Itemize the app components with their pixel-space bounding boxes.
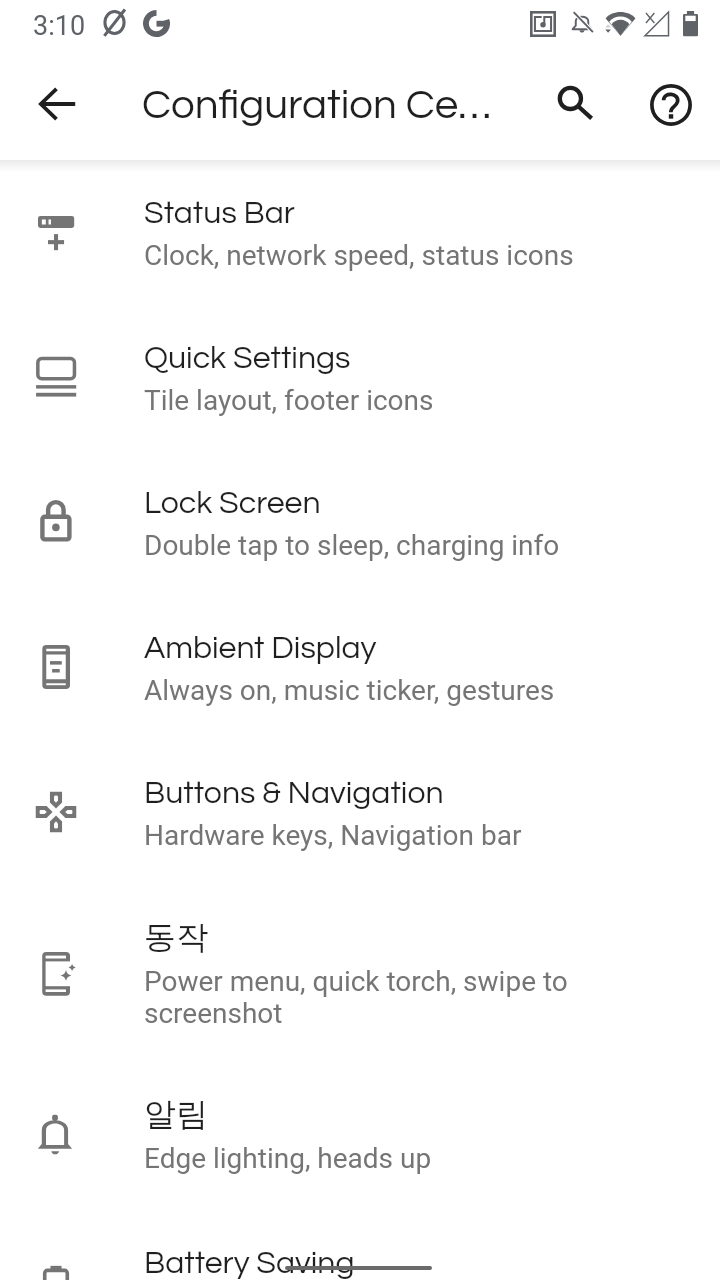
button[interactable]: 알림: [0, 1058, 720, 1203]
button[interactable]: 동작: [0, 897, 720, 1058]
staticText: Always on, music ticker, gestures: [144, 674, 584, 707]
staticText: Tile layout, footer icons: [144, 384, 584, 417]
staticText: Quick Settings: [144, 342, 351, 375]
staticText: Status Bar: [144, 197, 295, 230]
staticText: Lock Screen: [144, 487, 321, 520]
staticText: Clock, network speed, status icons: [144, 239, 584, 272]
staticText: 동작: [144, 917, 208, 957]
staticText: 3:10: [33, 10, 86, 42]
staticText: Configuration Ce…: [142, 84, 492, 127]
button[interactable]: Navigate up: [26, 70, 94, 138]
button[interactable]: Search: [541, 69, 609, 137]
button[interactable]: Ambient Display: [0, 607, 720, 752]
button[interactable]: Buttons & Navigation: [0, 752, 720, 897]
button[interactable]: Help: [637, 71, 705, 139]
staticText: 알림: [144, 1094, 208, 1134]
staticText: Ambient Display: [144, 632, 377, 665]
button[interactable]: Quick Settings: [0, 317, 720, 462]
staticText: Battery Saving: [144, 1247, 355, 1280]
staticText: Double tap to sleep, charging info: [144, 529, 584, 562]
staticText: Edge lighting, heads up: [144, 1142, 584, 1175]
button[interactable]: Status Bar: [0, 172, 720, 317]
button[interactable]: Battery Saving: [0, 1203, 720, 1280]
staticText: Buttons & Navigation: [144, 777, 444, 810]
button[interactable]: Lock Screen: [0, 462, 720, 607]
staticText: Power menu, quick torch, swipe to screen…: [144, 965, 584, 1030]
staticText: Hardware keys, Navigation bar: [144, 819, 584, 852]
